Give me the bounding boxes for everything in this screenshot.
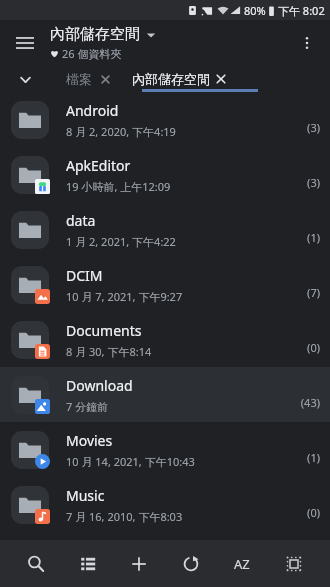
staticText: DCIM [66,266,103,285]
staticText: 10 月 14, 2021, 下午10:43 [66,454,195,469]
staticText: 19 小時前, 上午12:09 [66,179,171,194]
staticText: 內部儲存空間 [132,71,210,87]
button[interactable]: Download [0,367,330,422]
button[interactable]: data [0,202,330,257]
button[interactable]: 內部儲存空間 [129,71,229,87]
staticText: 80% [244,3,266,18]
staticText: Download [66,376,133,395]
staticText: 7 分鐘前 [66,399,109,414]
button[interactable]: Refresh [172,545,210,583]
staticText: 10 月 7, 2021, 下午9:27 [66,289,183,304]
staticText: 8 月 2, 2020, 下午4:19 [66,124,176,139]
staticText: (3) [307,120,320,135]
staticText: (0) [307,340,320,355]
staticText: 7 月 16, 2010, 下午8:03 [66,509,183,524]
button[interactable]: DCIM [0,257,330,312]
button[interactable]: ApkEditor [0,147,330,202]
staticText: (7) [307,285,320,300]
button[interactable]: Search [17,545,55,583]
button[interactable]: Select items [275,545,313,583]
staticText: ApkEditor [66,156,131,175]
button[interactable]: AZ [223,545,261,583]
staticText: 檔案 [66,71,92,87]
button[interactable]: Expand tabs [12,66,38,92]
staticText: (1) [307,230,320,245]
staticText: (3) [307,175,320,190]
button[interactable]: Movies [0,422,330,477]
button[interactable]: Music [0,477,330,532]
staticText: 8 月 30, 下午8:14 [66,344,152,359]
staticText: 下午 8:02 [278,3,325,18]
staticText: AZ [234,555,250,573]
staticText: 內部儲存空間 [50,25,140,44]
staticText: Music [66,486,105,505]
button[interactable]: List view [69,545,107,583]
button[interactable]: Menu [8,26,42,60]
staticText: (0) [307,505,320,520]
staticText: Documents [66,321,142,340]
staticText: (43) [300,395,320,410]
staticText: 1 月 2, 2021, 下午4:22 [66,234,176,249]
staticText: (1) [307,450,320,465]
staticText: data [66,211,96,230]
staticText: 26 個資料夾 [62,46,122,61]
button[interactable]: More options [290,26,324,60]
button[interactable]: Add [120,545,158,583]
button[interactable]: Documents [0,312,330,367]
staticText: Movies [66,431,113,450]
staticText: Android [66,101,119,120]
button[interactable]: Android [0,92,330,147]
button[interactable]: 檔案 [63,71,113,87]
